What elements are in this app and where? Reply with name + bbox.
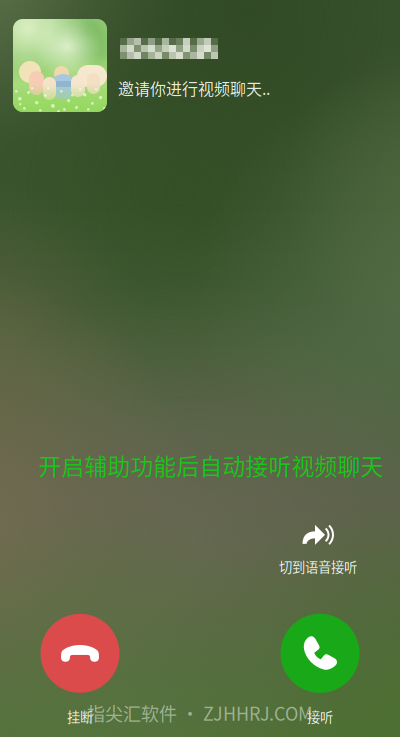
staticText: 邀请你进行视频聊天.. <box>118 76 270 100</box>
button[interactable]: 接听 <box>255 612 385 728</box>
staticText: 切到语音接听 <box>279 557 357 576</box>
staticText: 指尖汇软件 • ZJHHRJ.COM <box>87 700 313 726</box>
staticText: 开启辅助功能后自动接听视频聊天 <box>38 449 383 481</box>
button[interactable]: 切到语音接听 <box>248 518 388 580</box>
button[interactable]: 挂断 <box>15 612 145 728</box>
staticText: 挂断 <box>67 707 93 726</box>
staticText: 接听 <box>307 707 333 726</box>
